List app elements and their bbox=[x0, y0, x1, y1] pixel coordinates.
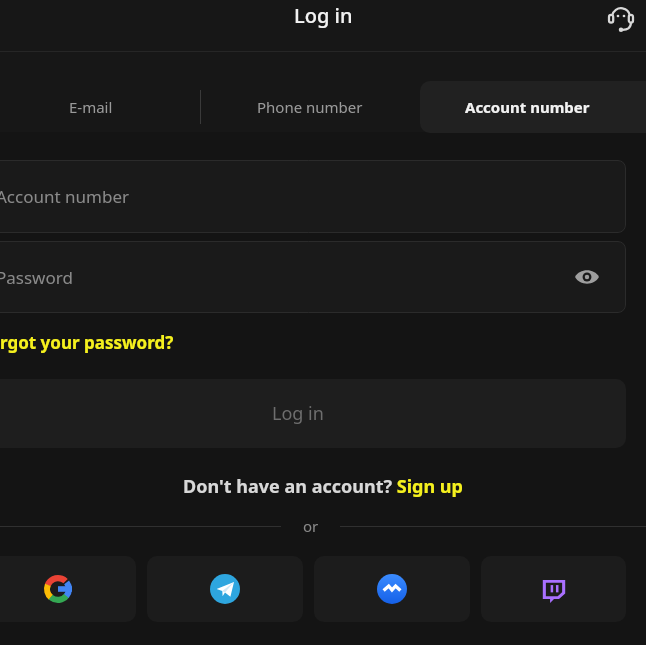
staticText: Account number bbox=[465, 97, 590, 117]
button[interactable]: Sign in with Twitch bbox=[481, 556, 626, 622]
staticText: Don't have an account? Sign up bbox=[183, 474, 463, 499]
button[interactable]: Log in bbox=[0, 379, 626, 448]
staticText: Password bbox=[0, 266, 73, 289]
staticText: Log in bbox=[272, 401, 324, 426]
button[interactable]: Account number bbox=[0, 160, 626, 233]
button[interactable]: E-mail bbox=[0, 81, 201, 133]
staticText: Log in bbox=[294, 2, 353, 29]
button[interactable]: Show password bbox=[570, 260, 604, 294]
button[interactable]: Support bbox=[602, 0, 640, 38]
button[interactable]: Sign in with Telegram bbox=[147, 556, 303, 622]
button[interactable]: Phone number bbox=[201, 81, 419, 133]
staticText: Phone number bbox=[257, 97, 363, 117]
button[interactable]: Sign in with Messenger bbox=[314, 556, 470, 622]
button[interactable]: Account number bbox=[420, 81, 646, 133]
button[interactable]: Sign in with Google bbox=[0, 556, 136, 622]
staticText: E-mail bbox=[69, 97, 113, 117]
button[interactable]: Password bbox=[0, 241, 626, 313]
staticText: Account number bbox=[0, 185, 130, 208]
button[interactable]: Forgot your password? bbox=[0, 325, 174, 359]
staticText: or bbox=[303, 516, 319, 536]
staticText: Forgot your password? bbox=[0, 331, 174, 354]
button[interactable]: Don't have an account? Sign up bbox=[183, 474, 463, 499]
